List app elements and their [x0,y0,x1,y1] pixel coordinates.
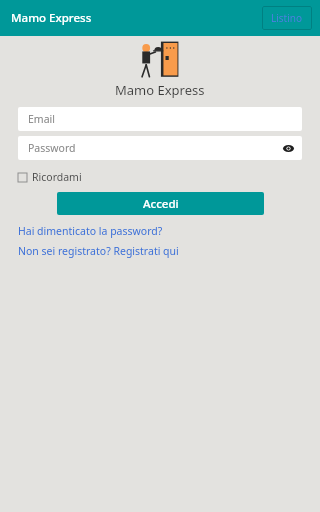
staticText: Accedi [143,196,179,212]
staticText: Email [28,112,55,126]
staticText: Listino [271,11,303,25]
staticText: Mamo Express [115,81,205,99]
staticText: Password [28,141,76,155]
button[interactable]: Accedi [57,192,264,215]
button[interactable]: Ricordami [18,169,82,185]
button[interactable]: Email [18,107,302,131]
button[interactable]: Password [18,136,302,160]
staticText: Mamo Express [11,10,92,26]
button[interactable]: Listino [262,6,312,30]
button[interactable]: Hai dimenticato la password? [18,224,163,238]
button[interactable]: Show password [280,140,296,156]
button[interactable]: Non sei registrato? Registrati qui [18,244,179,258]
staticText: Ricordami [32,170,82,184]
